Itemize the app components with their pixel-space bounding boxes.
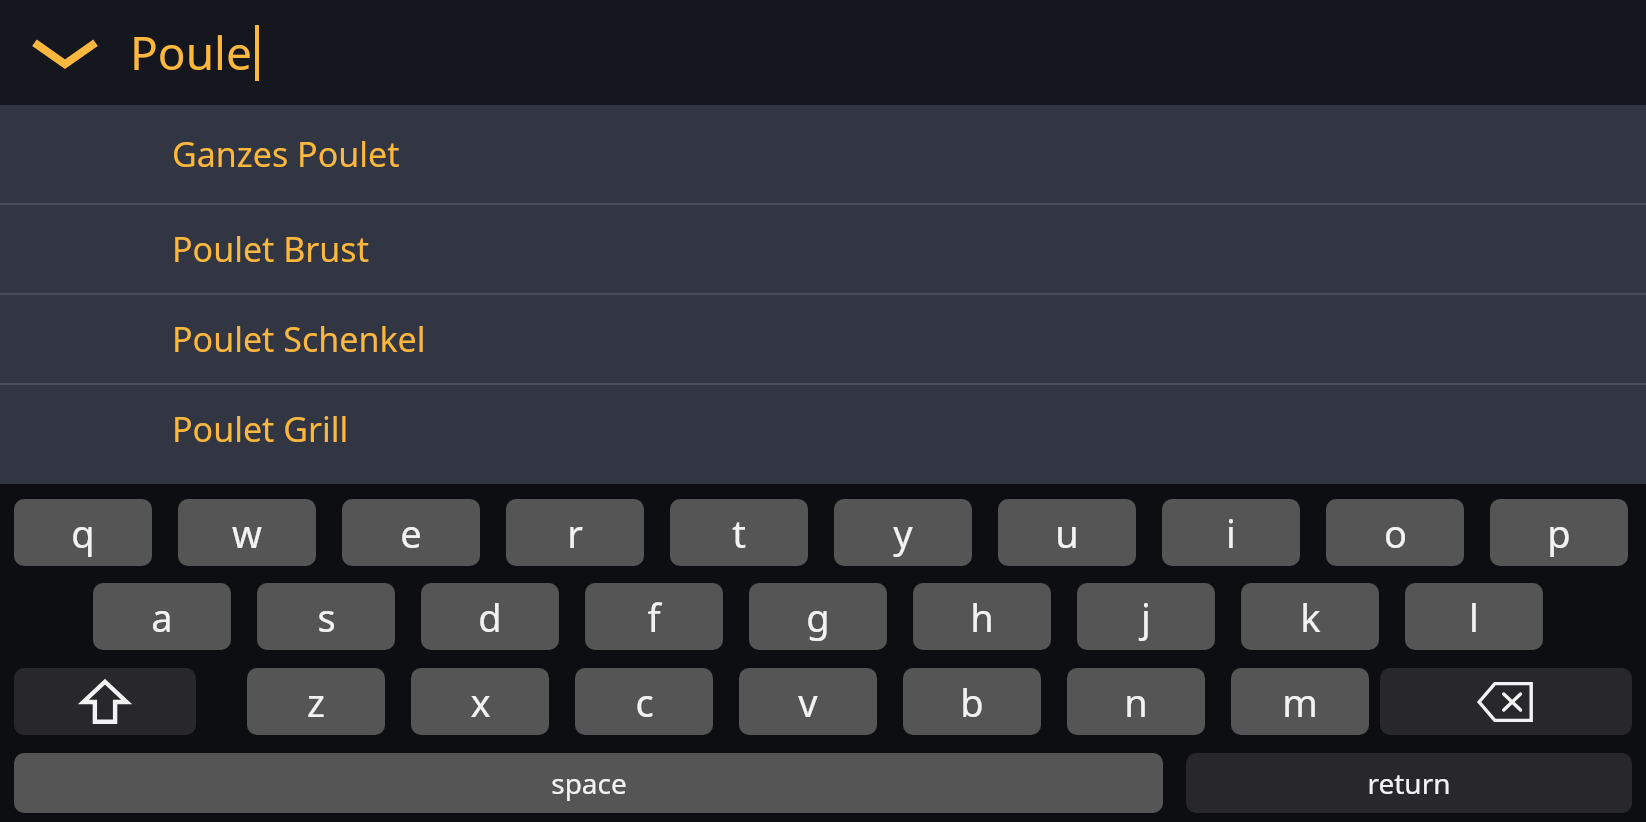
staticText: k [1300,591,1321,643]
button[interactable]: n [1067,668,1205,735]
button[interactable]: return [1186,753,1632,813]
button[interactable]: x [411,668,549,735]
staticText: d [478,591,502,643]
staticText: g [806,591,830,643]
button[interactable]: p [1490,499,1628,566]
button[interactable]: Poulet Brust [0,205,1646,293]
staticText: Poule [130,21,252,84]
button[interactable]: m [1231,668,1369,735]
button[interactable]: k [1241,583,1379,650]
button[interactable]: u [998,499,1136,566]
staticText: l [1469,591,1479,643]
staticText: v [798,676,818,728]
staticText: Ganzes Poulet [172,131,400,177]
button[interactable]: Poulet Grill [0,385,1646,473]
staticText: Poulet Schenkel [172,316,426,362]
button[interactable]: Backspace [1380,668,1632,735]
button[interactable]: j [1077,583,1215,650]
button[interactable]: f [585,583,723,650]
staticText: u [1055,507,1079,559]
button[interactable]: space [14,753,1163,813]
staticText: f [647,591,661,643]
staticText: j [1141,591,1151,643]
staticText: o [1384,507,1407,559]
button[interactable]: a [93,583,231,650]
staticText: y [893,507,913,559]
button[interactable]: y [834,499,972,566]
button[interactable]: d [421,583,559,650]
staticText: Poulet Grill [172,406,349,452]
button[interactable]: Collapse [0,0,130,105]
button[interactable]: Ganzes Poulet [0,105,1646,203]
staticText: x [470,676,491,728]
button[interactable]: Shift [14,668,196,735]
button[interactable]: z [247,668,385,735]
staticText: c [635,676,654,728]
staticText: w [232,507,262,559]
button[interactable]: v [739,668,877,735]
staticText: r [567,507,583,559]
button[interactable]: o [1326,499,1464,566]
button[interactable]: q [14,499,152,566]
button[interactable]: t [670,499,808,566]
button[interactable]: i [1162,499,1300,566]
staticText: Poulet Brust [172,226,369,272]
button[interactable]: h [913,583,1051,650]
staticText: e [400,507,422,559]
staticText: n [1124,676,1148,728]
staticText: return [1367,764,1451,802]
button[interactable]: l [1405,583,1543,650]
staticText: b [960,676,984,728]
button[interactable]: c [575,668,713,735]
staticText: s [317,591,336,643]
staticText: t [732,507,746,559]
button[interactable]: r [506,499,644,566]
staticText: i [1226,507,1236,559]
staticText: z [307,676,325,728]
staticText: p [1547,507,1571,559]
button[interactable]: b [903,668,1041,735]
button[interactable]: s [257,583,395,650]
staticText: a [151,591,173,643]
staticText: m [1282,676,1318,728]
button[interactable]: g [749,583,887,650]
staticText: space [551,764,627,802]
button[interactable]: w [178,499,316,566]
staticText: h [970,591,994,643]
button[interactable]: Poulet Schenkel [0,295,1646,383]
button[interactable]: e [342,499,480,566]
staticText: q [71,507,95,559]
